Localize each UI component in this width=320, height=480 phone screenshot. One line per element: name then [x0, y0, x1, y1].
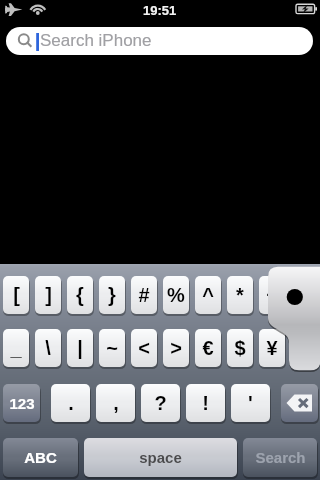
staticText: [ [13, 284, 20, 306]
button[interactable]: \ [35, 329, 61, 367]
button[interactable]: | [67, 329, 93, 367]
staticText: _ [10, 337, 22, 359]
staticText: ^ [202, 284, 214, 306]
button[interactable]: $ [227, 329, 253, 367]
button[interactable]: = [291, 276, 317, 314]
staticText: ] [45, 284, 52, 306]
button[interactable]: ] [35, 276, 61, 314]
button[interactable]: • [291, 329, 317, 367]
button[interactable]: 123 [3, 384, 40, 422]
staticText: , [113, 392, 119, 414]
staticText: Search [255, 449, 306, 466]
staticText: ? [154, 392, 167, 414]
staticText: + [266, 284, 278, 306]
button[interactable]: ¥ [259, 329, 285, 367]
button[interactable]: % [163, 276, 189, 314]
staticText: . [68, 392, 74, 414]
button[interactable]: _ [3, 329, 29, 367]
staticText: = [298, 284, 310, 306]
button[interactable]: ~ [99, 329, 125, 367]
button[interactable]: ? [141, 384, 180, 422]
staticText: Search iPhone [40, 31, 152, 50]
button[interactable]: , [96, 384, 135, 422]
button[interactable]: Backspace [281, 384, 318, 422]
button[interactable]: { [67, 276, 93, 314]
staticText: • [300, 337, 308, 359]
staticText: # [138, 284, 150, 306]
button[interactable]: ! [186, 384, 225, 422]
staticText: $ [234, 337, 246, 359]
staticText: * [236, 284, 244, 306]
staticText: € [202, 337, 214, 359]
staticText: > [170, 337, 182, 359]
button[interactable]: ^ [195, 276, 221, 314]
button[interactable]: Search [243, 438, 317, 477]
button[interactable]: * [227, 276, 253, 314]
staticText: ¥ [266, 337, 278, 359]
button[interactable]: space [84, 438, 237, 477]
staticText: % [167, 284, 185, 306]
staticText: < [138, 337, 150, 359]
staticText: ! [202, 392, 209, 414]
button[interactable]: > [163, 329, 189, 367]
button[interactable]: € [195, 329, 221, 367]
staticText: ~ [106, 337, 118, 359]
button[interactable]: ABC [3, 438, 78, 477]
button[interactable]: + [259, 276, 285, 314]
staticText: } [108, 284, 116, 306]
button[interactable]: } [99, 276, 125, 314]
staticText: 123 [9, 395, 35, 412]
staticText: | [77, 337, 83, 359]
staticText: { [76, 284, 84, 306]
button[interactable]: Search iPhone [6, 27, 313, 55]
button[interactable]: . [51, 384, 90, 422]
button[interactable]: # [131, 276, 157, 314]
button[interactable]: [ [3, 276, 29, 314]
staticText: ABC [24, 449, 57, 466]
staticText: 19:51 [143, 3, 177, 18]
button[interactable]: < [131, 329, 157, 367]
staticText: space [139, 449, 182, 466]
staticText: ' [248, 392, 253, 414]
button[interactable]: ' [231, 384, 270, 422]
staticText: \ [45, 337, 51, 359]
